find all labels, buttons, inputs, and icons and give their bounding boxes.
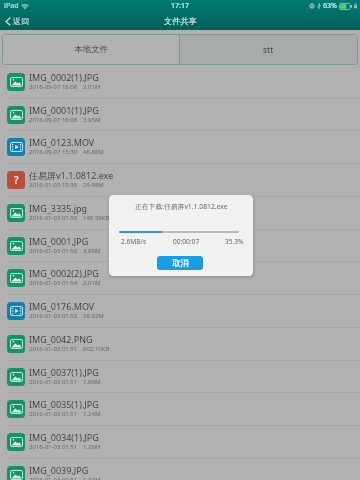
button[interactable]: stt xyxy=(180,35,357,64)
staticText: 35.3% xyxy=(225,237,244,246)
button[interactable]: IMG_0002(2).JPG xyxy=(0,262,360,295)
button[interactable]: 返回 xyxy=(0,14,35,28)
staticText: 文件共享 xyxy=(164,16,197,26)
staticText: 3.95M xyxy=(83,247,101,255)
staticText: IMG_0001(1).JPG xyxy=(29,104,99,116)
staticText: 1.69M xyxy=(83,378,101,386)
staticText: 2016-01-03 01:52 xyxy=(29,312,78,320)
staticText: 1.26M xyxy=(83,443,101,451)
staticText: IMG_0037(1).JPG xyxy=(29,366,99,378)
staticText: 返回 xyxy=(13,16,29,26)
staticText: 2016-01-03 01:51 xyxy=(29,476,78,480)
staticText: ? xyxy=(14,173,19,187)
staticText: 任易屏v1.1.0812.exe xyxy=(29,169,114,181)
staticText: IMG_0035(1).JPG xyxy=(29,398,99,410)
staticText: IMG_0123.MOV xyxy=(29,136,95,148)
staticText: 2016-09-07 16:08 xyxy=(29,116,78,124)
staticText: stt xyxy=(263,44,274,56)
staticText: IMG_0039.JPG xyxy=(29,464,89,476)
staticText: 2.6MB/s xyxy=(121,237,147,246)
button[interactable]: IMG_0035(1).JPG xyxy=(0,393,360,426)
staticText: 63% xyxy=(323,1,337,11)
button[interactable]: IMG_0042.PNG xyxy=(0,328,360,361)
button[interactable]: IMG_0001(1).JPG xyxy=(0,99,360,132)
button[interactable]: ? xyxy=(0,164,360,197)
staticText: 2.01M xyxy=(83,83,101,91)
button[interactable]: IMG_0176.MOV xyxy=(0,295,360,328)
button[interactable]: 取消 xyxy=(157,256,203,270)
staticText: 2016-01-03 01:51 xyxy=(29,443,78,451)
staticText: 2.01M xyxy=(83,279,101,287)
staticText: 正在下载:任易屏v1.1.0812.exe xyxy=(135,202,228,211)
staticText: IMG_0042.PNG xyxy=(29,333,93,345)
staticText: 取消 xyxy=(172,258,189,269)
staticText: 58.92M xyxy=(83,312,104,320)
staticText: 46.88M xyxy=(83,148,104,156)
button[interactable]: IMG_0001.JPG xyxy=(0,230,360,263)
button[interactable]: IMG_0034(1).JPG xyxy=(0,426,360,459)
staticText: 602.10KB xyxy=(83,345,110,353)
staticText: 2016-01-03 01:59 xyxy=(29,214,78,222)
staticText: IMG_0002(2).JPG xyxy=(29,267,99,279)
staticText: IMG_3335.jpg xyxy=(29,202,88,214)
staticText: 2016-09-07 16:08 xyxy=(29,83,78,91)
staticText: 2016-01-03 01:51 xyxy=(29,378,78,386)
staticText: 1.31M xyxy=(83,476,101,480)
staticText: iPad xyxy=(4,1,19,11)
staticText: 2016-01-03 19:36 xyxy=(29,181,78,189)
staticText: IMG_0034(1).JPG xyxy=(29,431,99,443)
staticText: 2016-09-07 15:30 xyxy=(29,148,78,156)
staticText: IMG_0001.JPG xyxy=(29,235,89,247)
staticText: 17:17 xyxy=(171,1,189,11)
staticText: 148.59KB xyxy=(83,214,110,222)
button[interactable]: IMG_0002(1).JPG xyxy=(0,66,360,99)
staticText: 2016-01-03 01:54 xyxy=(29,279,78,287)
button[interactable]: IMG_0039.JPG xyxy=(0,459,360,480)
staticText: 2016-01-03 01:51 xyxy=(29,345,78,353)
staticText: 2016-01-03 01:56 xyxy=(29,247,78,255)
button[interactable]: 本地文件 xyxy=(3,35,179,64)
staticText: 本地文件 xyxy=(74,44,108,55)
staticText: 29.98M xyxy=(83,181,104,189)
staticText: IMG_0176.MOV xyxy=(29,300,95,312)
staticText: 1.24M xyxy=(83,410,101,418)
staticText: 3.95M xyxy=(83,116,101,124)
staticText: IMG_0002(1).JPG xyxy=(29,71,99,83)
button[interactable]: IMG_0123.MOV xyxy=(0,131,360,164)
staticText: 00:00:07 xyxy=(173,237,200,246)
staticText: 2016-01-03 01:51 xyxy=(29,410,78,418)
button[interactable]: IMG_0037(1).JPG xyxy=(0,361,360,394)
button[interactable]: IMG_3335.jpg xyxy=(0,197,360,230)
